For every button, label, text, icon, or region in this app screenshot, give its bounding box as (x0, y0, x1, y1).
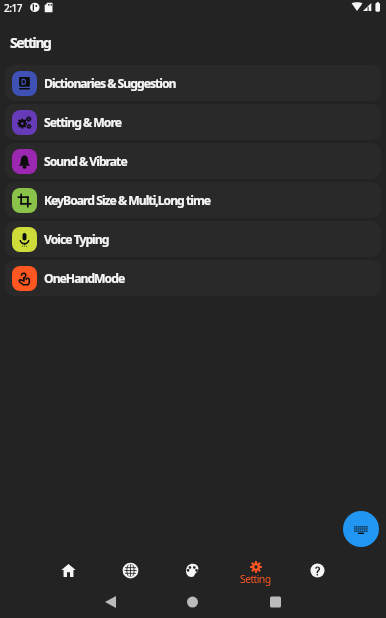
button[interactable]: Help (292, 548, 342, 590)
button[interactable]: Dictionaries & Suggestion (5, 65, 381, 101)
staticText: OneHandMode (44, 270, 125, 287)
staticText: Sound & Vibrate (44, 153, 127, 170)
staticText: Voice Typing (44, 231, 109, 248)
staticText: Setting (10, 33, 51, 52)
button[interactable]: KeyBoard Size & Multi,Long time (5, 182, 381, 218)
staticText: Dictionaries & Suggestion (44, 75, 176, 92)
staticText: 2:17 (4, 1, 22, 15)
button[interactable]: Setting & More (5, 104, 381, 140)
button[interactable]: Open keyboard (343, 511, 379, 547)
button[interactable]: Themes (167, 548, 217, 590)
button[interactable]: OneHandMode (5, 260, 381, 296)
staticText: Setting & More (44, 114, 121, 131)
button[interactable]: Sound & Vibrate (5, 143, 381, 179)
button[interactable]: Voice Typing (5, 221, 381, 257)
button[interactable]: Home (43, 548, 93, 590)
button[interactable]: Language (105, 548, 155, 590)
staticText: Setting (240, 572, 271, 586)
button[interactable]: Setting (230, 548, 280, 590)
staticText: KeyBoard Size & Multi,Long time (44, 192, 211, 209)
